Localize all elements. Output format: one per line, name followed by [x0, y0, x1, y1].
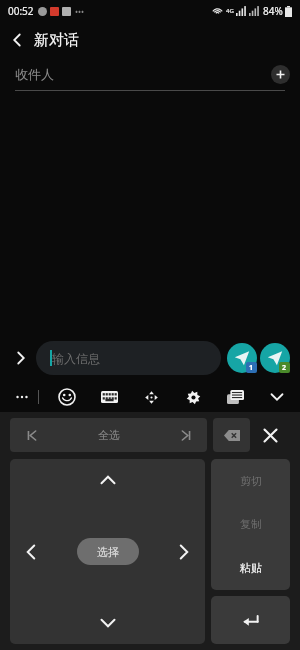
staticText: 4G: [226, 7, 234, 15]
button[interactable]: Backspace: [213, 418, 250, 452]
button[interactable]: More options: [10, 385, 34, 409]
staticText: 输入信息: [52, 351, 100, 366]
button[interactable]: Emoji: [54, 384, 80, 410]
staticText: 新对话: [34, 31, 79, 50]
button[interactable]: Left: [10, 510, 52, 593]
button[interactable]: Move cursor: [138, 384, 164, 410]
button[interactable]: 粘贴: [211, 546, 290, 590]
button[interactable]: Hide keyboard: [264, 384, 290, 410]
button[interactable]: Add recipient: [271, 65, 290, 84]
button[interactable]: Keyboard: [96, 384, 122, 410]
staticText: 复制: [240, 517, 262, 531]
button[interactable]: 输入信息: [36, 341, 221, 375]
staticText: 2: [282, 363, 287, 373]
button[interactable]: Down: [64, 602, 152, 644]
staticText: 粘贴: [240, 561, 262, 575]
button[interactable]: 剪切: [211, 459, 290, 502]
button[interactable]: Up: [64, 459, 152, 501]
button[interactable]: 全选: [54, 418, 163, 452]
staticText: •••: [75, 6, 85, 17]
button[interactable]: Close: [250, 418, 290, 452]
staticText: 剪切: [240, 474, 262, 488]
button[interactable]: Move to start: [10, 418, 54, 452]
button[interactable]: Back: [0, 23, 34, 57]
staticText: 1: [249, 363, 254, 373]
staticText: 00:52: [8, 4, 34, 18]
button[interactable]: Clipboard: [222, 384, 248, 410]
staticText: 全选: [98, 428, 120, 442]
button[interactable]: Send SIM 2: [260, 343, 290, 373]
button[interactable]: Enter: [211, 596, 290, 644]
button[interactable]: Send SIM 1: [227, 343, 257, 373]
button[interactable]: Settings: [180, 384, 206, 410]
staticText: 收件人: [15, 66, 54, 82]
staticText: 选择: [97, 545, 119, 559]
button[interactable]: Expand: [8, 345, 34, 371]
staticText: 84%: [263, 4, 283, 18]
button[interactable]: Move to end: [163, 418, 207, 452]
button[interactable]: 复制: [211, 502, 290, 546]
button[interactable]: 选择: [77, 538, 139, 565]
button[interactable]: Right: [163, 510, 205, 593]
